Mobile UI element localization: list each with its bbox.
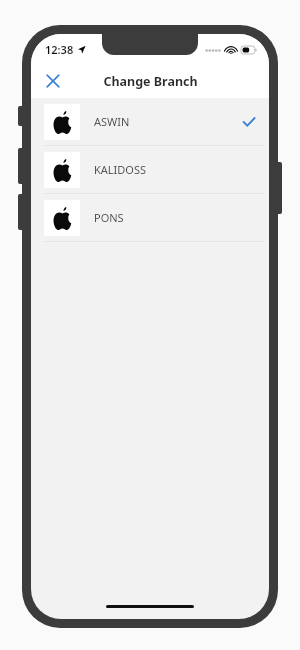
- button[interactable]: PONS: [31, 194, 269, 241]
- button[interactable]: ASWIN: [31, 98, 269, 145]
- staticText: Change Branch: [103, 73, 198, 90]
- staticText: 12:38: [45, 42, 74, 57]
- button[interactable]: KALIDOSS: [31, 146, 269, 193]
- staticText: KALIDOSS: [94, 162, 147, 177]
- staticText: ASWIN: [94, 114, 130, 129]
- staticText: PONS: [94, 210, 124, 225]
- button[interactable]: Close: [37, 65, 69, 97]
